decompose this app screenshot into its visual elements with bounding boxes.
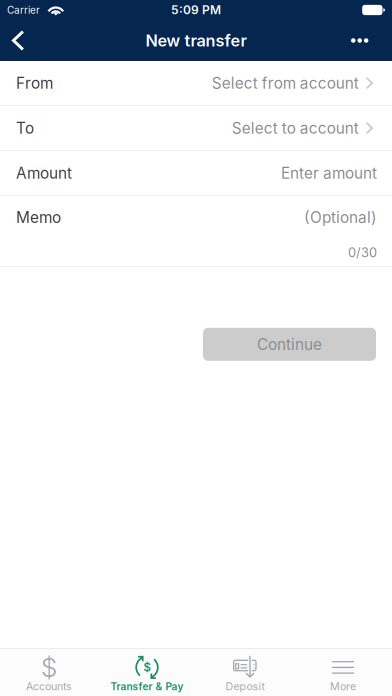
staticText: Accounts (26, 680, 72, 693)
staticText: $ (41, 652, 57, 683)
button[interactable]: Deposit (196, 649, 294, 696)
staticText: 0/30 (348, 245, 377, 260)
staticText: Enter amount (281, 164, 377, 182)
button[interactable]: More (294, 649, 392, 696)
staticText: New transfer (145, 31, 246, 50)
staticText: Amount (16, 164, 72, 182)
staticText: To (16, 119, 34, 137)
staticText: $ (143, 660, 150, 674)
button[interactable]: $ (0, 649, 98, 696)
button[interactable]: Continue (203, 328, 376, 361)
button[interactable]: From (0, 61, 392, 106)
staticText: From (16, 74, 53, 92)
staticText: (Optional) (304, 208, 377, 227)
staticText: Select to account (232, 119, 359, 137)
staticText: Select from account (212, 74, 359, 92)
staticText: Memo (16, 208, 61, 227)
button[interactable]: Memo (0, 196, 392, 239)
button[interactable]: To (0, 106, 392, 151)
button[interactable]: $ (98, 649, 196, 696)
staticText: 5:09 PM (171, 3, 221, 17)
staticText: More (330, 680, 356, 693)
staticText: Deposit (225, 680, 264, 693)
staticText: Continue (257, 335, 322, 354)
staticText: Carrier (7, 4, 40, 16)
button[interactable]: More actions (337, 20, 392, 61)
button[interactable]: Back (0, 20, 38, 61)
button[interactable]: Amount (0, 151, 392, 196)
staticText: Transfer & Pay (110, 680, 183, 693)
